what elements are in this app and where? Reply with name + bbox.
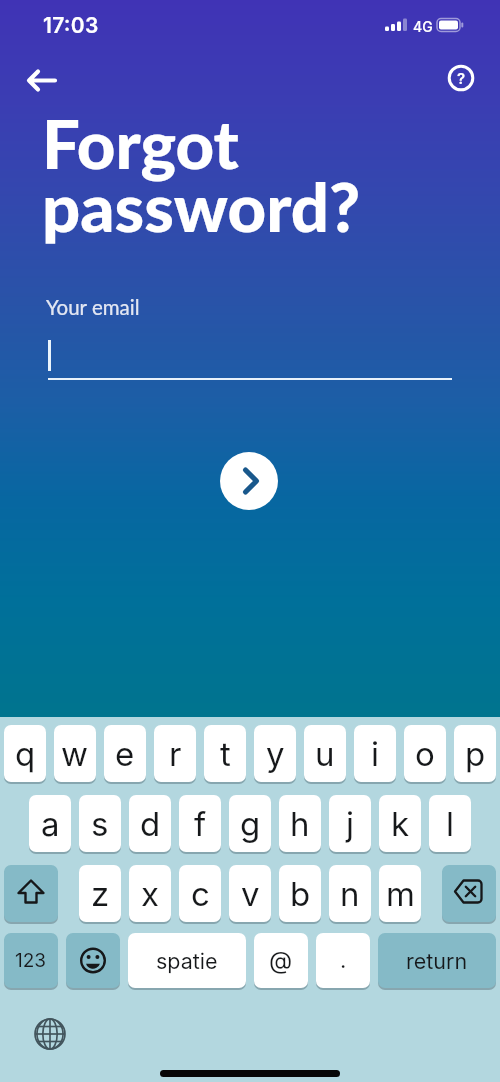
button[interactable]: 123 bbox=[4, 933, 58, 988]
button[interactable]: v bbox=[229, 865, 271, 922]
staticText: z bbox=[91, 874, 110, 914]
button[interactable] bbox=[16, 60, 68, 100]
staticText: v bbox=[241, 874, 260, 914]
staticText: . bbox=[340, 947, 347, 974]
button[interactable]: z bbox=[79, 865, 121, 922]
staticText: a bbox=[41, 804, 60, 844]
button[interactable]: l bbox=[429, 795, 471, 852]
staticText: m bbox=[386, 874, 415, 914]
staticText: r bbox=[169, 734, 182, 774]
button[interactable]: ? bbox=[446, 63, 476, 93]
staticText: h bbox=[290, 804, 310, 844]
button[interactable]: return bbox=[378, 933, 496, 988]
staticText: o bbox=[415, 734, 435, 774]
staticText: b bbox=[290, 874, 311, 914]
button[interactable]: x bbox=[129, 865, 171, 922]
staticText: password? bbox=[42, 166, 361, 246]
button[interactable]: i bbox=[354, 725, 396, 782]
button[interactable]: @ bbox=[254, 933, 308, 988]
staticText: Forgot bbox=[42, 103, 239, 183]
staticText: t bbox=[220, 734, 231, 774]
staticText: Your email bbox=[46, 295, 140, 320]
staticText: k bbox=[391, 804, 410, 844]
button[interactable]: p bbox=[454, 725, 496, 782]
button[interactable]: r bbox=[154, 725, 196, 782]
button[interactable]: t bbox=[204, 725, 246, 782]
button[interactable] bbox=[34, 1018, 66, 1050]
button[interactable] bbox=[442, 865, 496, 922]
staticText: 123 bbox=[15, 949, 47, 972]
button[interactable]: c bbox=[179, 865, 221, 922]
staticText: n bbox=[340, 874, 360, 914]
button[interactable] bbox=[66, 933, 120, 988]
button[interactable]: s bbox=[79, 795, 121, 852]
staticText: j bbox=[346, 804, 354, 844]
button[interactable] bbox=[220, 452, 278, 510]
staticText: ? bbox=[457, 69, 466, 87]
button[interactable]: f bbox=[179, 795, 221, 852]
button[interactable]: e bbox=[104, 725, 146, 782]
staticText: x bbox=[141, 874, 160, 914]
staticText: q bbox=[15, 734, 36, 774]
button[interactable]: u bbox=[304, 725, 346, 782]
staticText: w bbox=[61, 734, 89, 774]
button[interactable]: d bbox=[129, 795, 171, 852]
staticText: g bbox=[240, 804, 261, 844]
staticText: 4G bbox=[413, 18, 433, 35]
staticText: f bbox=[194, 804, 207, 844]
staticText: e bbox=[115, 734, 135, 774]
staticText: c bbox=[191, 874, 210, 914]
button[interactable]: o bbox=[404, 725, 446, 782]
button[interactable]: a bbox=[29, 795, 71, 852]
button[interactable]: m bbox=[379, 865, 421, 922]
button[interactable]: b bbox=[279, 865, 321, 922]
staticText: @ bbox=[269, 946, 293, 975]
button[interactable]: w bbox=[54, 725, 96, 782]
button[interactable]: k bbox=[379, 795, 421, 852]
staticText: d bbox=[140, 804, 161, 844]
button[interactable]: y bbox=[254, 725, 296, 782]
staticText: u bbox=[315, 734, 335, 774]
button[interactable]: . bbox=[316, 933, 370, 988]
staticText: return bbox=[406, 948, 468, 974]
staticText: p bbox=[465, 734, 486, 774]
staticText: 17:03 bbox=[43, 13, 99, 38]
staticText: spatie bbox=[156, 948, 218, 974]
staticText: i bbox=[371, 734, 379, 774]
button[interactable]: n bbox=[329, 865, 371, 922]
staticText: y bbox=[266, 734, 285, 774]
button[interactable]: j bbox=[329, 795, 371, 852]
button[interactable]: q bbox=[4, 725, 46, 782]
button[interactable]: spatie bbox=[128, 933, 246, 988]
button[interactable]: g bbox=[229, 795, 271, 852]
button[interactable]: h bbox=[279, 795, 321, 852]
button[interactable] bbox=[4, 865, 58, 922]
staticText: s bbox=[91, 804, 109, 844]
staticText: l bbox=[446, 804, 454, 844]
